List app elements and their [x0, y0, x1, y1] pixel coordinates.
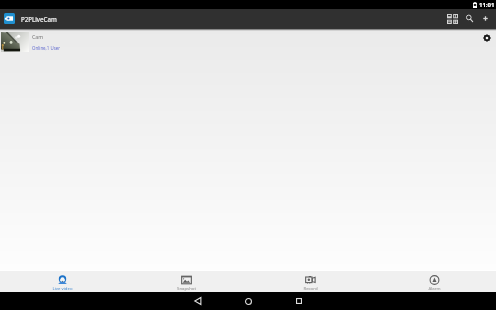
button[interactable]: Live video	[0, 271, 124, 292]
button[interactable]: Cam	[0, 28, 496, 53]
button[interactable]: Alarm	[372, 271, 496, 292]
staticText: Alarm	[428, 285, 441, 291]
button[interactable]: Add camera	[477, 9, 494, 28]
button[interactable]: Home	[233, 292, 263, 310]
button[interactable]: Device grid	[444, 9, 461, 28]
staticText: 11:01	[479, 1, 495, 9]
button[interactable]: Camera settings	[480, 33, 494, 51]
staticText: Online,1 User	[32, 45, 61, 51]
button[interactable]: Snapshot	[124, 271, 248, 292]
staticText: Record	[303, 285, 318, 291]
staticText: Cam	[32, 33, 44, 40]
staticText: Live video	[52, 285, 73, 291]
button[interactable]: Recent apps	[284, 292, 314, 310]
button[interactable]: Record	[248, 271, 372, 292]
button[interactable]: Back	[182, 292, 212, 310]
button[interactable]: Search	[461, 9, 477, 28]
staticText: P2PLiveCam	[21, 15, 57, 23]
staticText: Snapshot	[177, 285, 196, 291]
